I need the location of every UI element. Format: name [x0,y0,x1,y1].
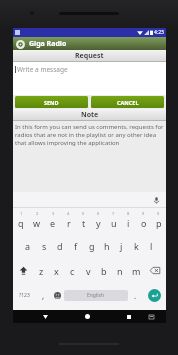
staticText: f [74,240,78,252]
staticText: 4:23 [154,29,164,36]
button[interactable]: English [64,290,128,301]
staticText: m [132,265,141,277]
staticText: b [101,265,107,277]
staticText: l [150,240,153,252]
staticText: s [42,240,47,252]
button[interactable]: Emoji [50,283,64,308]
button[interactable]: z [34,258,49,283]
staticText: g [89,240,95,252]
button[interactable]: 1 [13,208,29,233]
staticText: 6 [97,211,100,216]
staticText: j [120,240,123,252]
staticText: English [87,292,105,299]
button[interactable]: n [112,258,128,283]
staticText: z [39,265,44,277]
button[interactable]: f [68,233,84,258]
button[interactable]: Voice input [151,195,161,205]
staticText: CANCEL [117,99,139,106]
button[interactable]: , [36,283,50,308]
staticText: . [134,290,137,301]
staticText: p [156,217,162,229]
staticText: n [117,265,123,277]
button[interactable]: Enter [148,289,161,302]
staticText: 8 [127,211,130,216]
staticText: 4 [67,211,70,216]
button[interactable]: 4 [61,208,76,233]
button[interactable]: j [114,233,129,258]
staticText: t [82,217,86,229]
staticText: q [18,217,24,229]
button[interactable]: 9 [136,208,151,233]
staticText: i [127,217,130,229]
button[interactable]: h [99,233,114,258]
button[interactable]: a [20,233,36,258]
staticText: x [54,265,59,277]
staticText: Note [81,110,99,120]
staticText: Request [75,51,104,61]
button[interactable]: 2 [29,208,45,233]
staticText: , [42,290,45,301]
button[interactable]: Write a message [13,62,166,95]
button[interactable]: 0 [151,208,166,233]
staticText: w [33,217,41,229]
button[interactable]: 6 [91,208,106,233]
button[interactable]: 7 [106,208,121,233]
button[interactable]: Home [76,310,98,323]
staticText: u [111,217,117,229]
button[interactable]: l [144,233,159,258]
staticText: v [86,265,91,277]
button[interactable]: d [52,233,68,258]
staticText: e [50,217,56,229]
button[interactable]: . [128,283,142,308]
staticText: y [96,217,101,229]
staticText: h [104,240,110,252]
staticText: 2 [36,211,39,216]
button[interactable]: k [129,233,144,258]
button[interactable]: SEND [15,96,88,108]
staticText: Write a message [17,65,68,74]
staticText: SEND [44,99,59,106]
button[interactable]: Recents [118,310,140,323]
staticText: 0 [157,211,160,216]
button[interactable]: x [49,258,64,283]
staticText: 3 [52,211,55,216]
button[interactable]: Backspace [144,258,166,283]
staticText: c [70,265,75,277]
button[interactable]: 8 [121,208,136,233]
staticText: 9 [142,211,145,216]
button[interactable]: c [64,258,80,283]
button[interactable]: CANCEL [91,96,164,108]
staticText: 7 [112,211,115,216]
button[interactable]: b [96,258,112,283]
staticText: d [57,240,63,252]
button[interactable]: s [36,233,52,258]
button[interactable]: 3 [45,208,61,233]
button[interactable]: Shift [13,258,34,283]
button[interactable]: m [128,258,144,283]
button[interactable]: ?123 [13,283,36,308]
staticText: r [67,217,71,229]
button[interactable]: v [80,258,96,283]
staticText: a [25,240,31,252]
button[interactable]: Switch keyboard [140,310,162,323]
staticText: 5 [82,211,85,216]
staticText: In this form you can send us comments, r… [15,123,164,147]
staticText: k [134,240,139,252]
staticText: Giga Radio [29,39,67,49]
staticText: 1 [20,211,23,216]
staticText: o [141,217,147,229]
button[interactable]: 5 [76,208,91,233]
button[interactable]: Back [34,310,56,323]
staticText: ?123 [19,292,30,299]
button[interactable]: g [84,233,99,258]
